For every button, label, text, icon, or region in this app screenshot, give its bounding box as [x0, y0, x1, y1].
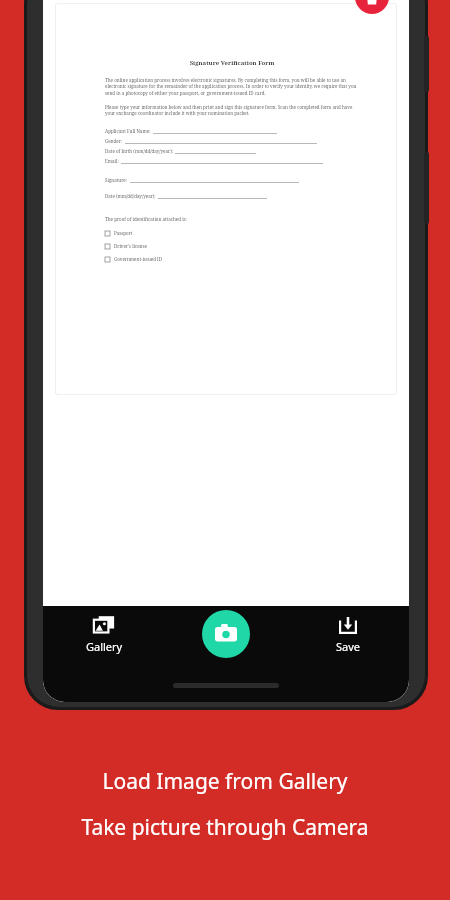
button[interactable]: Gallery: [43, 614, 165, 654]
button[interactable]: Camera: [202, 610, 250, 658]
staticText: The proof of identification attached is:: [105, 216, 187, 222]
staticText: Signature Verification Form: [105, 59, 359, 67]
staticText: Gallery: [86, 639, 123, 654]
staticText: The online application process involves …: [105, 77, 359, 97]
staticText: Government-issued ID: [114, 256, 163, 262]
staticText: Save: [336, 639, 361, 654]
staticText: Please type your information below and t…: [105, 104, 359, 117]
button[interactable]: Signature Verification Form: [55, 3, 397, 395]
staticText: Applicant Full Name:: [105, 128, 151, 134]
staticText: Signature:: [105, 177, 128, 183]
staticText: Load Image from Gallery: [102, 767, 348, 796]
staticText: Take picture through Camera: [81, 813, 369, 842]
staticText: Date (mm/dd/day/year):: [105, 193, 156, 199]
staticText: Gender:: [105, 138, 123, 144]
staticText: Passport: [114, 230, 133, 236]
staticText: Date of birth (mm/dd/day/year):: [105, 148, 173, 154]
button[interactable]: Save: [287, 614, 409, 654]
staticText: Email:: [105, 158, 119, 164]
button[interactable]: Delete: [355, 0, 389, 14]
staticText: Driver's license: [114, 243, 147, 249]
